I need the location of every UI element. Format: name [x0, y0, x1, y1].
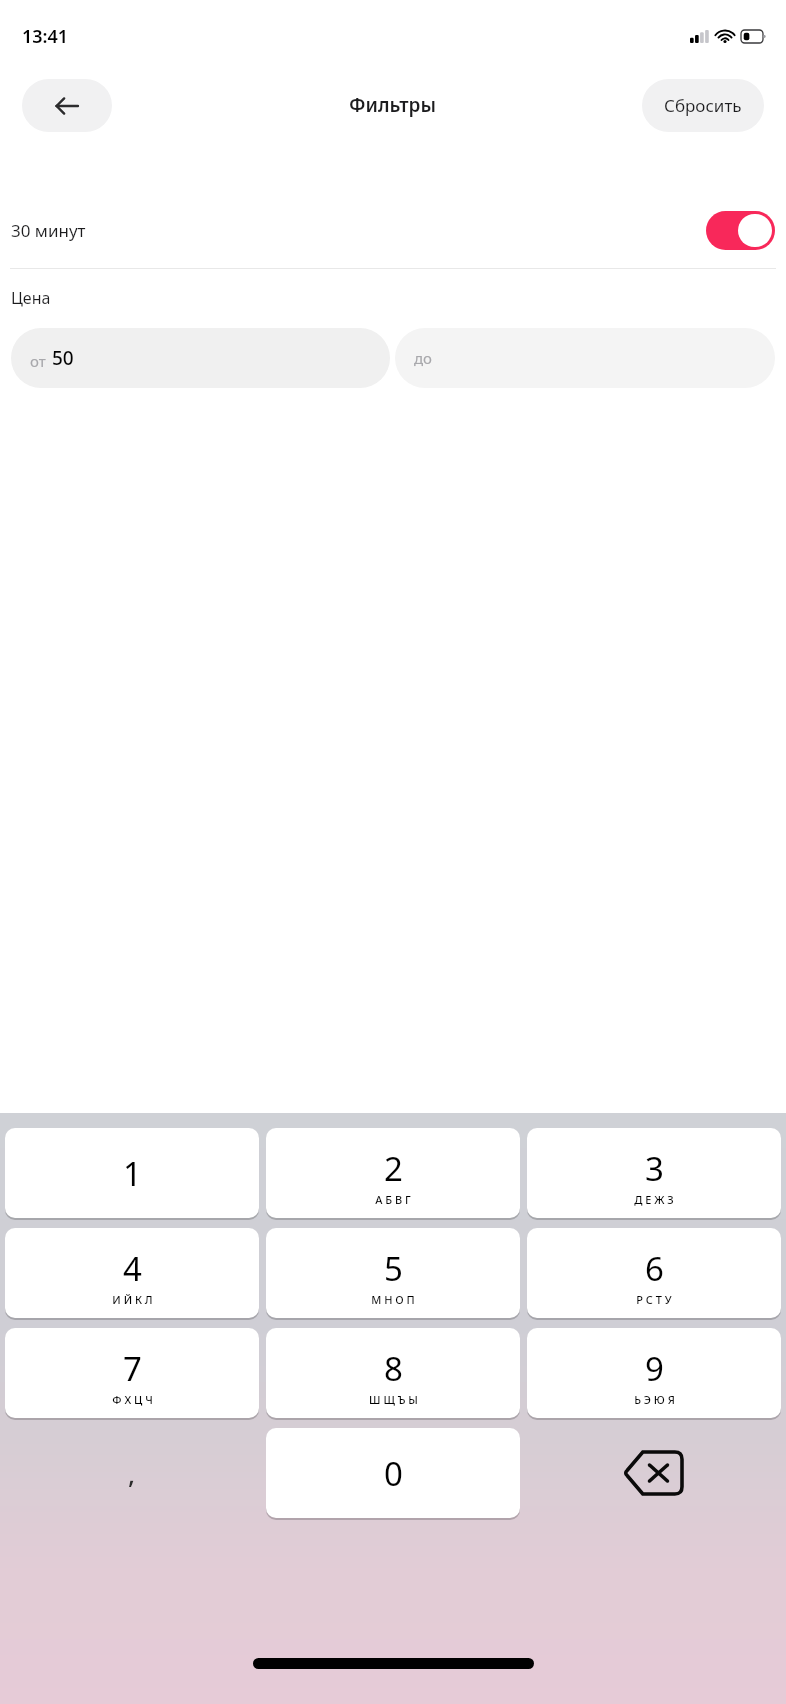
staticText: 50	[52, 345, 74, 371]
button[interactable]: до	[395, 328, 775, 388]
button[interactable]: 0	[266, 1428, 520, 1518]
button[interactable]: 5	[266, 1228, 520, 1318]
staticText: Ш Щ Ъ Ы	[369, 1392, 418, 1407]
button[interactable]: 30 minutes toggle	[706, 211, 775, 250]
button[interactable]: 1	[5, 1128, 259, 1218]
button[interactable]: 2	[266, 1128, 520, 1218]
button[interactable]: от	[11, 328, 390, 388]
staticText: 2	[384, 1146, 403, 1191]
staticText: И Й К Л	[112, 1292, 153, 1307]
staticText: до	[414, 348, 433, 368]
staticText: Сбросить	[664, 94, 742, 117]
staticText: 30 минут	[11, 219, 86, 242]
button[interactable]: 8	[266, 1328, 520, 1418]
staticText: 5	[384, 1246, 403, 1291]
staticText: Фильтры	[349, 92, 437, 118]
staticText: А Б В Г	[375, 1192, 411, 1207]
staticText: Цена	[11, 287, 51, 309]
button[interactable]: 4	[5, 1228, 259, 1318]
button[interactable]: 3	[527, 1128, 781, 1218]
staticText: Ф Х Ц Ч	[112, 1392, 153, 1407]
button[interactable]: ,	[5, 1428, 259, 1518]
staticText: Д Е Ж З	[634, 1192, 674, 1207]
staticText: 0	[384, 1451, 403, 1496]
staticText: 6	[645, 1246, 664, 1291]
staticText: 7	[123, 1346, 142, 1391]
staticText: ,	[128, 1456, 136, 1491]
button[interactable]: 30 минут	[0, 192, 786, 268]
staticText: Р С Т У	[636, 1292, 672, 1307]
staticText: 3	[645, 1146, 664, 1191]
staticText: М Н О П	[371, 1292, 415, 1307]
button[interactable]: 9	[527, 1328, 781, 1418]
staticText: 4	[123, 1246, 142, 1291]
button[interactable]: Back	[22, 79, 112, 132]
button[interactable]: 6	[527, 1228, 781, 1318]
staticText: от	[30, 351, 46, 371]
staticText: Ь Э Ю Я	[634, 1392, 675, 1407]
button[interactable]: Backspace	[527, 1428, 781, 1518]
staticText: 1	[123, 1151, 142, 1196]
button[interactable]: 7	[5, 1328, 259, 1418]
staticText: 9	[645, 1346, 664, 1391]
staticText: 13:41	[22, 24, 69, 49]
staticText: 8	[384, 1346, 403, 1391]
button[interactable]: Сбросить	[642, 79, 764, 132]
